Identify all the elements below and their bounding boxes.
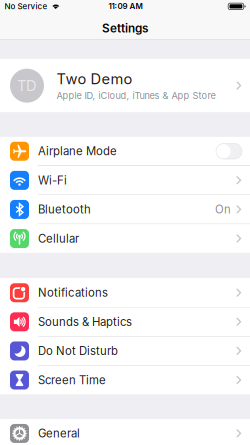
button[interactable]: General [0,419,250,445]
button[interactable]: Bluetooth [0,195,250,224]
staticText: No Service [4,1,47,11]
staticText: Two Demo [56,70,132,88]
staticText: Apple ID, iCloud, iTunes & App Store [56,90,215,101]
staticText: On [215,203,231,216]
button[interactable]: Sounds & Haptics [0,308,250,336]
staticText: Screen Time [38,373,106,387]
button[interactable]: Cellular [0,224,250,253]
staticText: Notifications [38,286,108,300]
staticText: Settings [102,21,148,35]
staticText: Bluetooth [38,203,91,216]
staticText: Airplane Mode [38,144,117,158]
button[interactable]: TD [0,59,250,112]
button[interactable]: Screen Time [0,366,250,394]
staticText: Do Not Disturb [38,344,118,358]
button[interactable]: Do Not Disturb [0,337,250,365]
staticText: Wi-Fi [38,173,67,187]
button[interactable]: Notifications [0,278,250,307]
staticText: General [38,427,80,440]
staticText: 11:09 AM [108,1,142,11]
staticText: Sounds & Haptics [38,315,132,329]
button[interactable]: Wi-Fi [0,166,250,195]
staticText: TD [17,77,37,94]
staticText: Cellular [38,232,79,245]
button[interactable]: Airplane Mode [0,137,250,165]
